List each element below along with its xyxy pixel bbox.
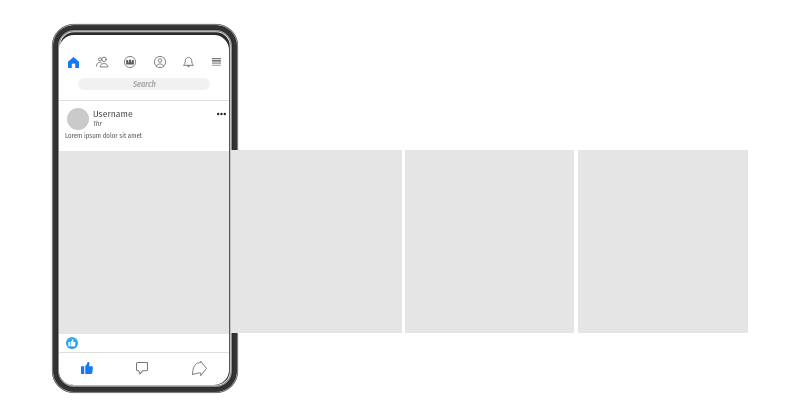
staticText: 1hr xyxy=(93,119,102,127)
button[interactable]: Home xyxy=(62,51,84,73)
button[interactable]: Friends xyxy=(91,51,113,73)
staticText: Lorem ipsum dolor sit amet xyxy=(65,132,143,140)
button[interactable]: Comment xyxy=(128,357,156,379)
button[interactable]: Like xyxy=(73,357,101,379)
button[interactable]: Marketplace xyxy=(119,51,141,73)
button[interactable]: Share xyxy=(185,357,213,379)
button[interactable]: Menu xyxy=(205,51,227,73)
button[interactable]: Search xyxy=(78,78,210,90)
staticText: Username xyxy=(93,108,133,120)
staticText: Search xyxy=(133,79,156,89)
button[interactable]: More options xyxy=(212,106,229,122)
button[interactable]: Notifications xyxy=(177,51,199,73)
button[interactable]: Profile xyxy=(149,51,171,73)
